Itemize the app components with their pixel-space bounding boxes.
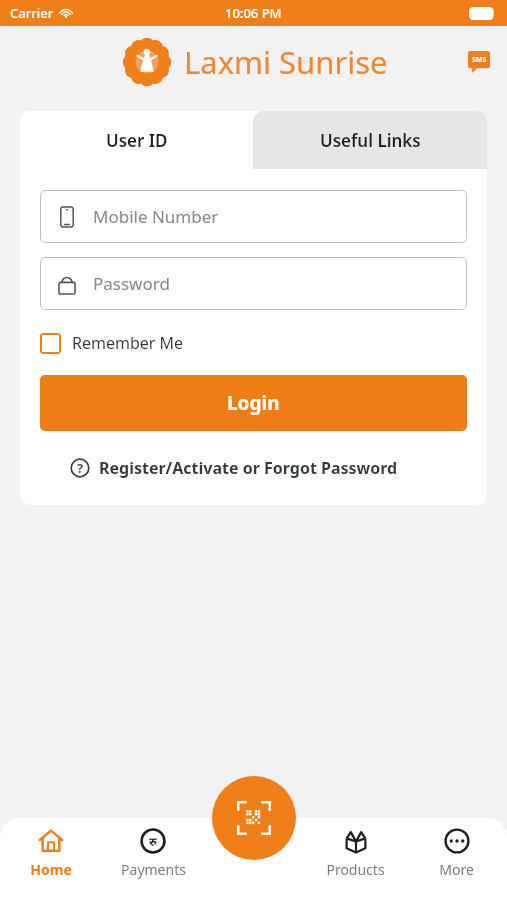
staticText: Mobile Number bbox=[93, 205, 219, 228]
staticText: Home bbox=[30, 860, 72, 879]
staticText: Products bbox=[326, 860, 385, 879]
staticText: Login bbox=[227, 390, 280, 416]
button[interactable]: Password bbox=[40, 257, 467, 310]
staticText: Useful Links bbox=[320, 129, 421, 152]
button[interactable]: रु bbox=[102, 828, 204, 900]
button[interactable]: SMS bbox=[465, 48, 493, 76]
button[interactable]: Login bbox=[40, 375, 467, 431]
button[interactable]: Remember Me bbox=[40, 332, 184, 354]
staticText: More bbox=[439, 860, 474, 879]
staticText: ? bbox=[77, 459, 84, 477]
staticText: SMS bbox=[472, 55, 487, 65]
button[interactable]: Products bbox=[305, 828, 406, 900]
button[interactable]: Mobile Number bbox=[40, 190, 467, 243]
button[interactable]: User ID bbox=[20, 111, 253, 169]
staticText: Carrier bbox=[10, 4, 54, 22]
staticText: User ID bbox=[106, 129, 168, 152]
staticText: Register/Activate or Forgot Password bbox=[99, 457, 398, 479]
staticText: Payments bbox=[121, 860, 186, 879]
button[interactable]: More bbox=[406, 828, 507, 900]
staticText: Remember Me bbox=[72, 332, 184, 354]
staticText: रु bbox=[149, 833, 157, 849]
staticText: Laxmi Sunrise bbox=[184, 41, 388, 83]
staticText: Password bbox=[93, 272, 170, 295]
button[interactable]: Useful Links bbox=[253, 111, 487, 169]
button[interactable]: Scan QR code bbox=[212, 776, 296, 860]
button[interactable]: ? bbox=[40, 457, 467, 479]
button[interactable]: Home bbox=[0, 828, 102, 900]
staticText: 10:06 PM bbox=[225, 4, 282, 22]
